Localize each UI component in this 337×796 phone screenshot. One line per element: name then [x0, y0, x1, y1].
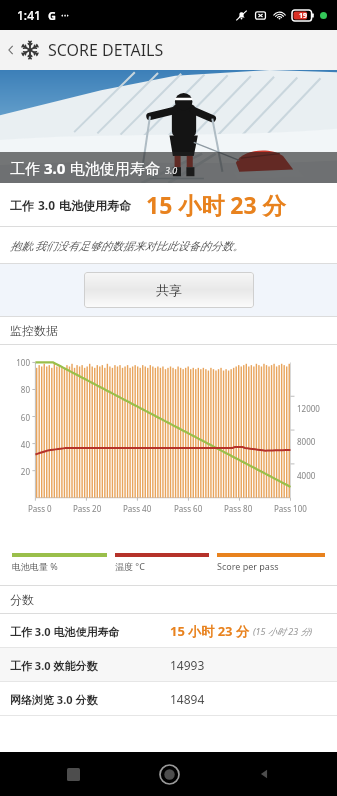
staticText: Pass 20 [73, 503, 102, 514]
staticText: 3.0 [165, 164, 178, 176]
staticText: 60 [2, 412, 30, 423]
button[interactable]: 网络浏览 3.0 分数 [0, 682, 337, 715]
staticText: 8000 [297, 436, 316, 447]
staticText: 3.0 [44, 158, 66, 178]
staticText: 共享 [156, 282, 182, 298]
staticText: 14993 [170, 657, 205, 673]
staticText: 工作 3.0 效能分数 [10, 658, 170, 673]
button[interactable]: Back [242, 752, 286, 796]
staticText: 80 [2, 384, 30, 395]
staticText: Pass 80 [224, 503, 253, 514]
staticText: (15 小时 23 分) [253, 625, 313, 637]
staticText: 12000 [297, 403, 320, 414]
button[interactable]: Back [0, 30, 337, 70]
staticText: 电池使用寿命 [66, 158, 160, 178]
button[interactable]: Home [147, 752, 191, 796]
staticText: Pass 0 [28, 503, 52, 514]
button[interactable]: 工作 3.0 电池使用寿命 [0, 614, 337, 647]
staticText: Pass 100 [274, 503, 307, 514]
staticText: 100 [2, 357, 30, 368]
staticText: 14894 [170, 691, 205, 707]
staticText: 20 [2, 466, 30, 477]
staticText: 抱歉,我们没有足够的数据来对比此设备的分数。 [10, 238, 244, 253]
staticText: 网络浏览 3.0 分数 [10, 692, 170, 707]
staticText: SCORE DETAILS [48, 39, 164, 61]
staticText: 15 小时 23 分 [146, 189, 286, 220]
staticText: 电池使用寿命 [56, 197, 132, 213]
staticText: 监控数据 [10, 323, 58, 338]
staticText: 40 [2, 439, 30, 450]
staticText: 工作 3.0 电池使用寿命 [10, 624, 170, 639]
other: Back [4, 43, 18, 57]
staticText: G [48, 8, 56, 23]
staticText: 工作 [10, 197, 38, 213]
staticText: Pass 60 [174, 503, 203, 514]
staticText: 19 [299, 11, 308, 21]
staticText: 工作 [10, 158, 44, 178]
staticText: 3.0 [38, 197, 56, 213]
staticText: 4000 [297, 470, 316, 481]
staticText: 电池电量 % [12, 560, 58, 572]
staticText: Pass 40 [123, 503, 152, 514]
button[interactable]: 共享 [84, 272, 254, 308]
staticText: Score per pass [217, 560, 279, 572]
button[interactable]: Recents [51, 752, 95, 796]
staticText: ··· [61, 8, 70, 22]
staticText: 分数 [10, 592, 34, 607]
button[interactable]: 工作 3.0 效能分数 [0, 648, 337, 681]
staticText: 15 小时 23 分 [170, 622, 249, 640]
staticText: 温度 °C [115, 560, 145, 572]
staticText: 1:41 [17, 7, 41, 23]
